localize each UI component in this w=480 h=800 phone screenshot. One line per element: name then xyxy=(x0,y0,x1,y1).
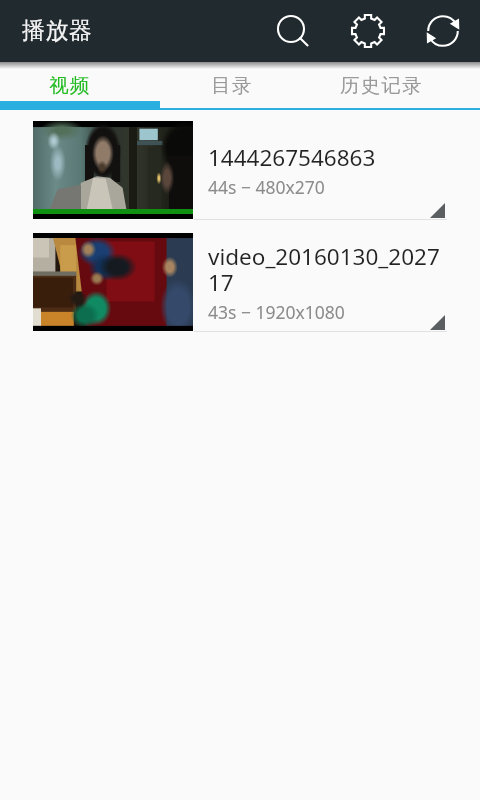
button[interactable]: video_20160130_202717 xyxy=(0,220,480,332)
staticText: 1444267546863 xyxy=(208,142,376,173)
button[interactable]: 视频 xyxy=(0,69,160,110)
staticText: 历史记录 xyxy=(340,73,423,98)
staticText: 目录 xyxy=(211,73,253,98)
staticText: 43s − 1920x1080 xyxy=(208,300,345,324)
button[interactable]: 1444267546863 xyxy=(0,110,480,220)
button[interactable]: 历史记录 xyxy=(320,69,480,110)
button[interactable]: Search xyxy=(255,0,330,62)
staticText: video_20160130_202717 xyxy=(208,241,442,298)
staticText: 视频 xyxy=(49,73,91,98)
staticText: 播放器 xyxy=(22,16,93,45)
staticText: 44s − 480x270 xyxy=(208,175,325,199)
button[interactable]: Refresh xyxy=(405,0,480,62)
button[interactable]: 目录 xyxy=(160,69,320,110)
button[interactable]: Settings xyxy=(330,0,405,62)
